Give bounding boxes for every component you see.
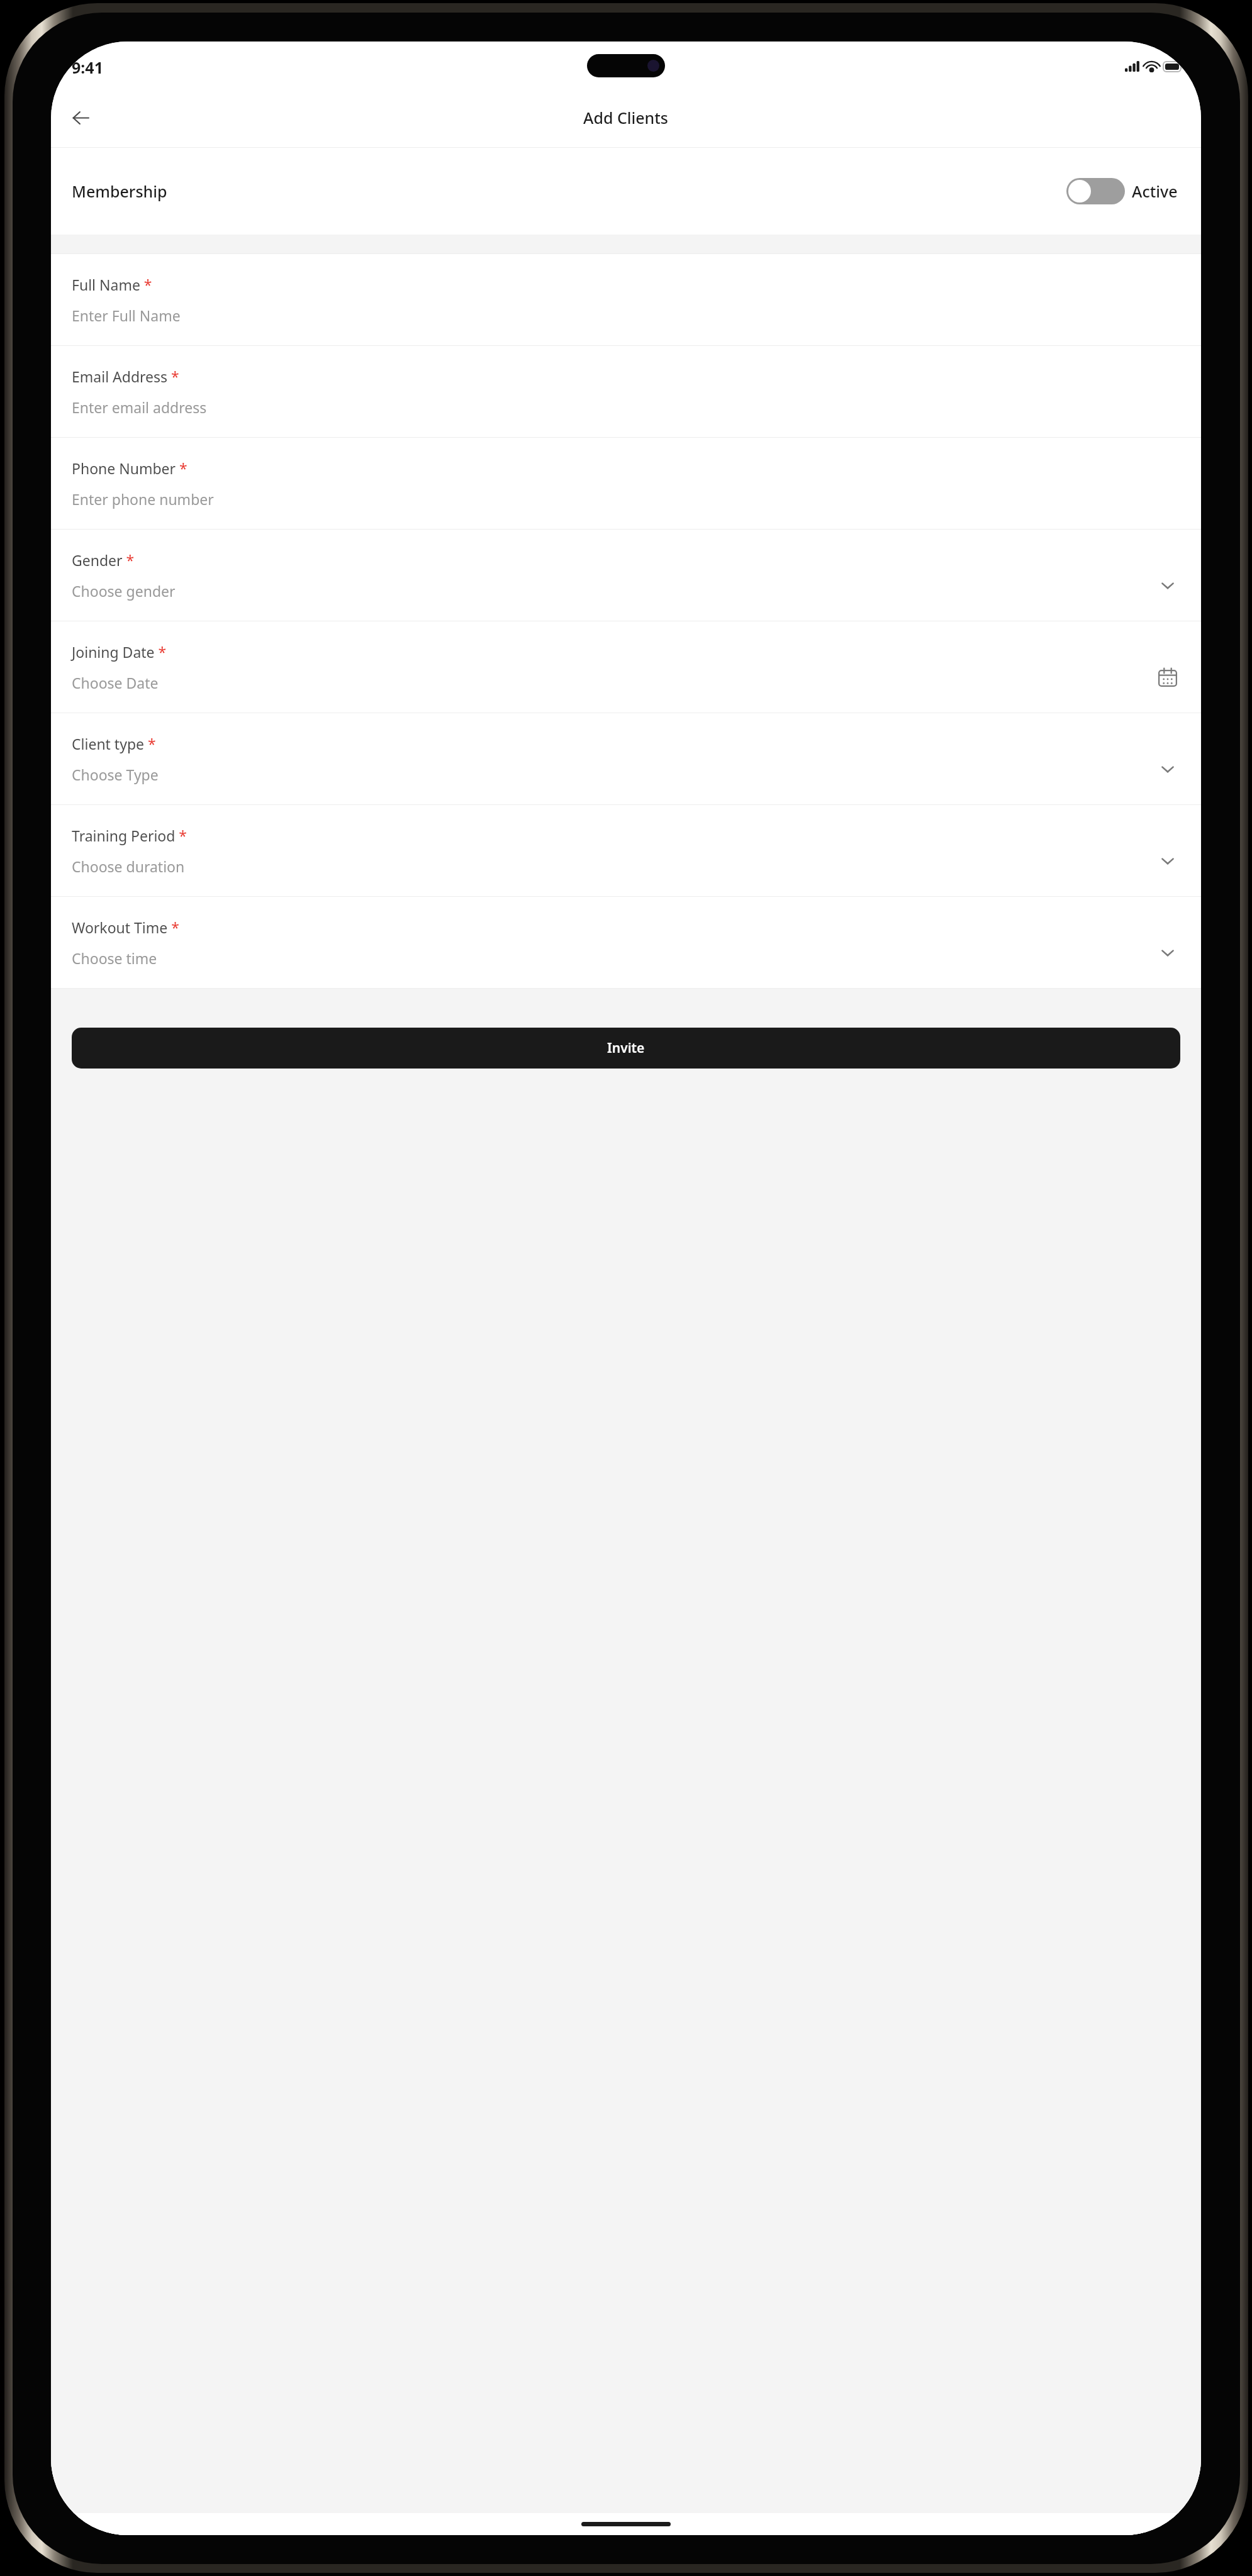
other: Open Workout Time options: [1155, 940, 1180, 965]
other: Open Training Period options: [1155, 848, 1180, 874]
button[interactable]: Client type *: [51, 713, 1201, 805]
staticText: Email Address *: [72, 367, 179, 386]
button[interactable]: Back: [62, 99, 99, 136]
button[interactable]: Full Name *: [51, 254, 1201, 346]
other: Open Client type options: [1155, 757, 1180, 782]
button[interactable]: Joining Date *: [51, 621, 1201, 713]
staticText: Choose duration: [72, 857, 185, 876]
staticText: Enter email address: [72, 397, 207, 417]
staticText: 9:41: [72, 57, 103, 78]
staticText: Choose Date: [72, 673, 159, 692]
button[interactable]: Phone Number *: [51, 438, 1201, 530]
staticText: Phone Number *: [72, 458, 187, 478]
staticText: Training Period *: [72, 826, 187, 845]
staticText: Enter phone number: [72, 489, 214, 509]
staticText: Add Clients: [583, 107, 669, 128]
staticText: Active: [1132, 180, 1178, 202]
button[interactable]: Workout Time *: [51, 897, 1201, 988]
staticText: Client type *: [72, 734, 156, 753]
staticText: Workout Time *: [72, 918, 179, 937]
button[interactable]: Training Period *: [51, 805, 1201, 897]
button[interactable]: Invite: [72, 1028, 1180, 1069]
staticText: Enter Full Name: [72, 306, 181, 325]
other: Pick date: [1155, 665, 1180, 690]
staticText: Choose time: [72, 948, 157, 968]
staticText: Invite: [607, 1039, 645, 1057]
staticText: Choose gender: [72, 581, 176, 601]
staticText: Joining Date *: [72, 642, 167, 662]
staticText: Gender *: [72, 550, 135, 570]
button[interactable]: Gender *: [51, 530, 1201, 621]
staticText: Full Name *: [72, 275, 152, 294]
staticText: Membership: [72, 180, 167, 202]
button[interactable]: Active: [1064, 175, 1180, 207]
staticText: Choose Type: [72, 765, 159, 784]
button[interactable]: Email Address *: [51, 346, 1201, 438]
other: Open Gender options: [1155, 573, 1180, 598]
